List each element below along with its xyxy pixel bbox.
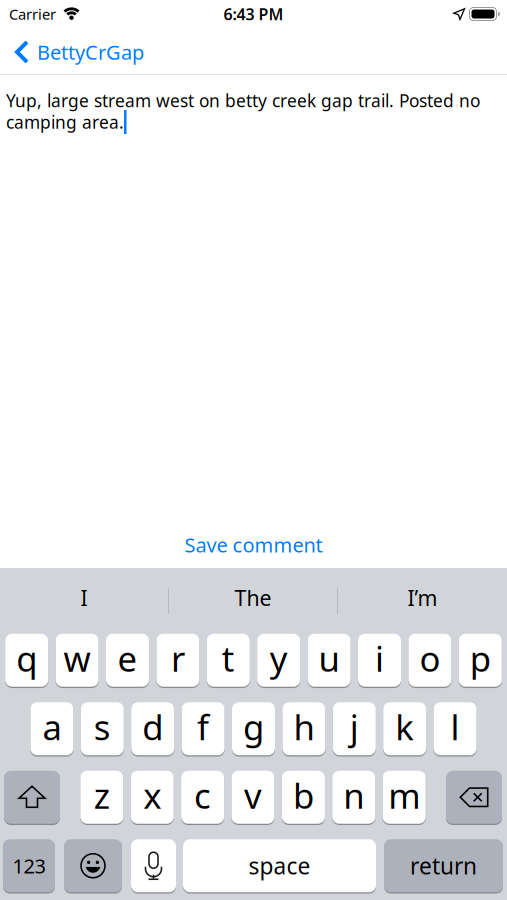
button[interactable]: q [5, 634, 48, 687]
staticText: c [194, 772, 211, 818]
staticText: o [419, 635, 440, 681]
staticText: s [94, 704, 111, 750]
button[interactable]: j [333, 702, 376, 755]
staticText: The [234, 584, 271, 612]
button[interactable]: a [30, 702, 73, 755]
staticText: Save comment [184, 531, 322, 558]
staticText: r [171, 635, 185, 681]
staticText: b [293, 772, 314, 818]
staticText: I’m [407, 584, 437, 612]
staticText: i [375, 635, 384, 681]
button[interactable]: n [332, 771, 375, 824]
button[interactable]: I [0, 568, 168, 634]
staticText: 6:43 PM [223, 3, 283, 25]
staticText: l [451, 704, 460, 750]
button[interactable]: return [384, 839, 503, 892]
button[interactable]: c [181, 771, 224, 824]
staticText: a [42, 704, 61, 750]
button[interactable]: l [434, 702, 477, 755]
button[interactable]: t [207, 634, 250, 687]
button[interactable]: f [182, 702, 225, 755]
button[interactable]: The [169, 568, 337, 634]
button[interactable]: x [131, 771, 174, 824]
button[interactable]: Back [0, 39, 144, 65]
button[interactable]: z [80, 771, 123, 824]
staticText: n [343, 772, 364, 818]
staticText: k [395, 704, 414, 750]
staticText: p [470, 635, 491, 681]
button[interactable]: Delete [446, 771, 502, 824]
staticText: e [117, 635, 137, 681]
button[interactable]: k [383, 702, 426, 755]
staticText: x [143, 772, 161, 818]
button[interactable]: e [106, 634, 149, 687]
button[interactable]: r [156, 634, 199, 687]
staticText: j [350, 704, 359, 750]
staticText: d [142, 704, 163, 750]
staticText: I [80, 584, 87, 612]
staticText: v [244, 772, 262, 818]
staticText: space [248, 851, 310, 881]
button[interactable]: w [56, 634, 99, 687]
button[interactable]: u [308, 634, 351, 687]
button[interactable]: y [257, 634, 300, 687]
staticText: return [410, 851, 477, 881]
button[interactable]: I’m [338, 568, 507, 634]
staticText: w [64, 635, 91, 681]
staticText: g [243, 704, 264, 750]
staticText: u [319, 635, 340, 681]
button[interactable]: v [231, 771, 274, 824]
staticText: Yup, large stream west on betty creek ga… [6, 89, 480, 112]
staticText: Carrier [9, 4, 56, 24]
button[interactable]: s [81, 702, 124, 755]
button[interactable]: Numbers [3, 839, 55, 892]
button[interactable]: d [131, 702, 174, 755]
button[interactable]: h [282, 702, 325, 755]
button[interactable]: i [358, 634, 401, 687]
button[interactable]: p [459, 634, 502, 687]
staticText: f [197, 704, 209, 750]
staticText: t [222, 635, 235, 681]
button[interactable]: Emoji [64, 839, 122, 892]
staticText: h [293, 704, 314, 750]
staticText: camping area. [6, 110, 124, 133]
button[interactable]: m [383, 771, 426, 824]
staticText: z [94, 772, 110, 818]
button[interactable]: b [282, 771, 325, 824]
button[interactable]: g [232, 702, 275, 755]
staticText: y [270, 635, 288, 681]
staticText: 123 [12, 852, 45, 879]
staticText: BettyCrGap [37, 39, 144, 65]
button[interactable]: Dictate [131, 839, 176, 892]
button[interactable]: o [408, 634, 451, 687]
button[interactable]: Shift [4, 771, 60, 824]
button[interactable]: space [183, 839, 376, 892]
staticText: q [16, 635, 37, 681]
staticText: m [388, 772, 420, 818]
button[interactable]: Save comment [184, 531, 322, 558]
